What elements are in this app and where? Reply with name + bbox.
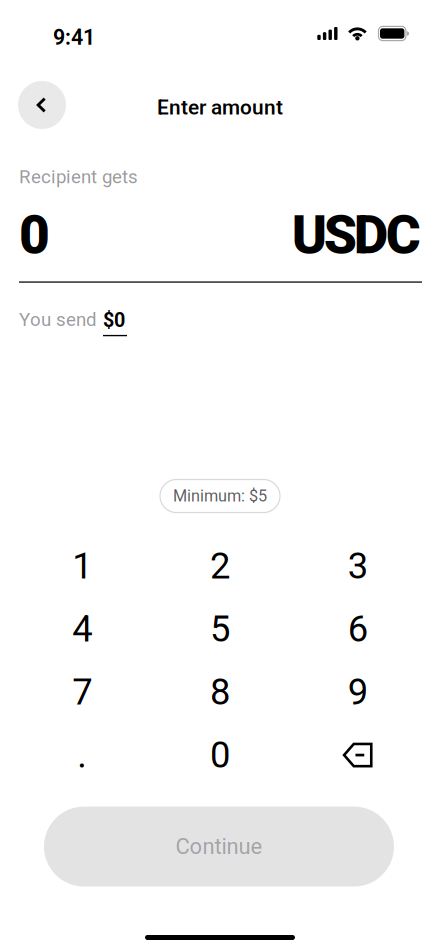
button[interactable]: 6 [289, 598, 426, 661]
staticText: 7 [72, 671, 92, 713]
button[interactable]: 3 [289, 535, 426, 598]
staticText: 9 [348, 671, 368, 713]
button[interactable]: 5 [151, 598, 289, 661]
button[interactable]: 0 [151, 724, 289, 787]
staticText: 8 [210, 671, 230, 713]
button[interactable]: Delete [289, 724, 426, 787]
staticText: 3 [348, 545, 368, 587]
button[interactable]: Continue [44, 807, 394, 887]
staticText: $0 [103, 309, 125, 332]
staticText: 9:41 [53, 25, 95, 50]
staticText: 5 [210, 608, 230, 650]
button[interactable]: . [13, 724, 151, 787]
button[interactable]: 7 [13, 661, 151, 724]
staticText: Continue [175, 834, 262, 859]
staticText: 0 [19, 204, 50, 266]
button[interactable]: 9 [289, 661, 426, 724]
button[interactable]: 1 [13, 535, 151, 598]
button[interactable]: 2 [151, 535, 289, 598]
staticText: 1 [72, 545, 92, 587]
staticText: 6 [348, 608, 368, 650]
staticText: USDC [292, 204, 421, 266]
staticText: You send [19, 309, 97, 331]
staticText: Minimum: $5 [173, 486, 267, 506]
staticText: Enter amount [157, 95, 283, 120]
staticText: 2 [210, 545, 230, 587]
button[interactable]: 4 [13, 598, 151, 661]
button[interactable]: Back [18, 81, 66, 129]
staticText: . [77, 734, 87, 776]
button[interactable]: 8 [151, 661, 289, 724]
staticText: Recipient gets [19, 166, 138, 188]
staticText: 4 [72, 608, 92, 650]
staticText: 0 [210, 734, 230, 776]
button[interactable]: Minimum: $5 [160, 479, 280, 513]
